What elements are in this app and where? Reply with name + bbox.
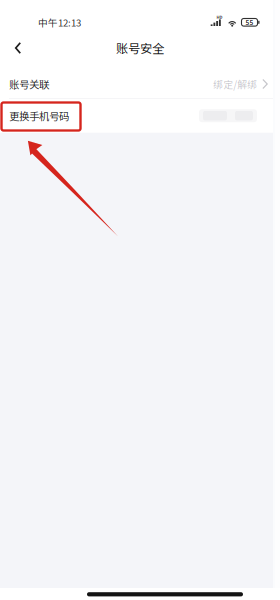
- button[interactable]: 账号关联: [0, 70, 280, 98]
- staticText: HD: [216, 14, 222, 20]
- staticText: 账号关联: [9, 76, 49, 92]
- button[interactable]: Back: [0, 34, 36, 62]
- staticText: 账号安全: [116, 39, 164, 57]
- staticText: 55: [245, 18, 253, 27]
- staticText: 更换手机号码: [9, 108, 69, 123]
- button[interactable]: 更换手机号码: [0, 99, 280, 133]
- staticText: 中午12:13: [38, 15, 81, 29]
- staticText: 绑定/解绑: [213, 77, 257, 91]
